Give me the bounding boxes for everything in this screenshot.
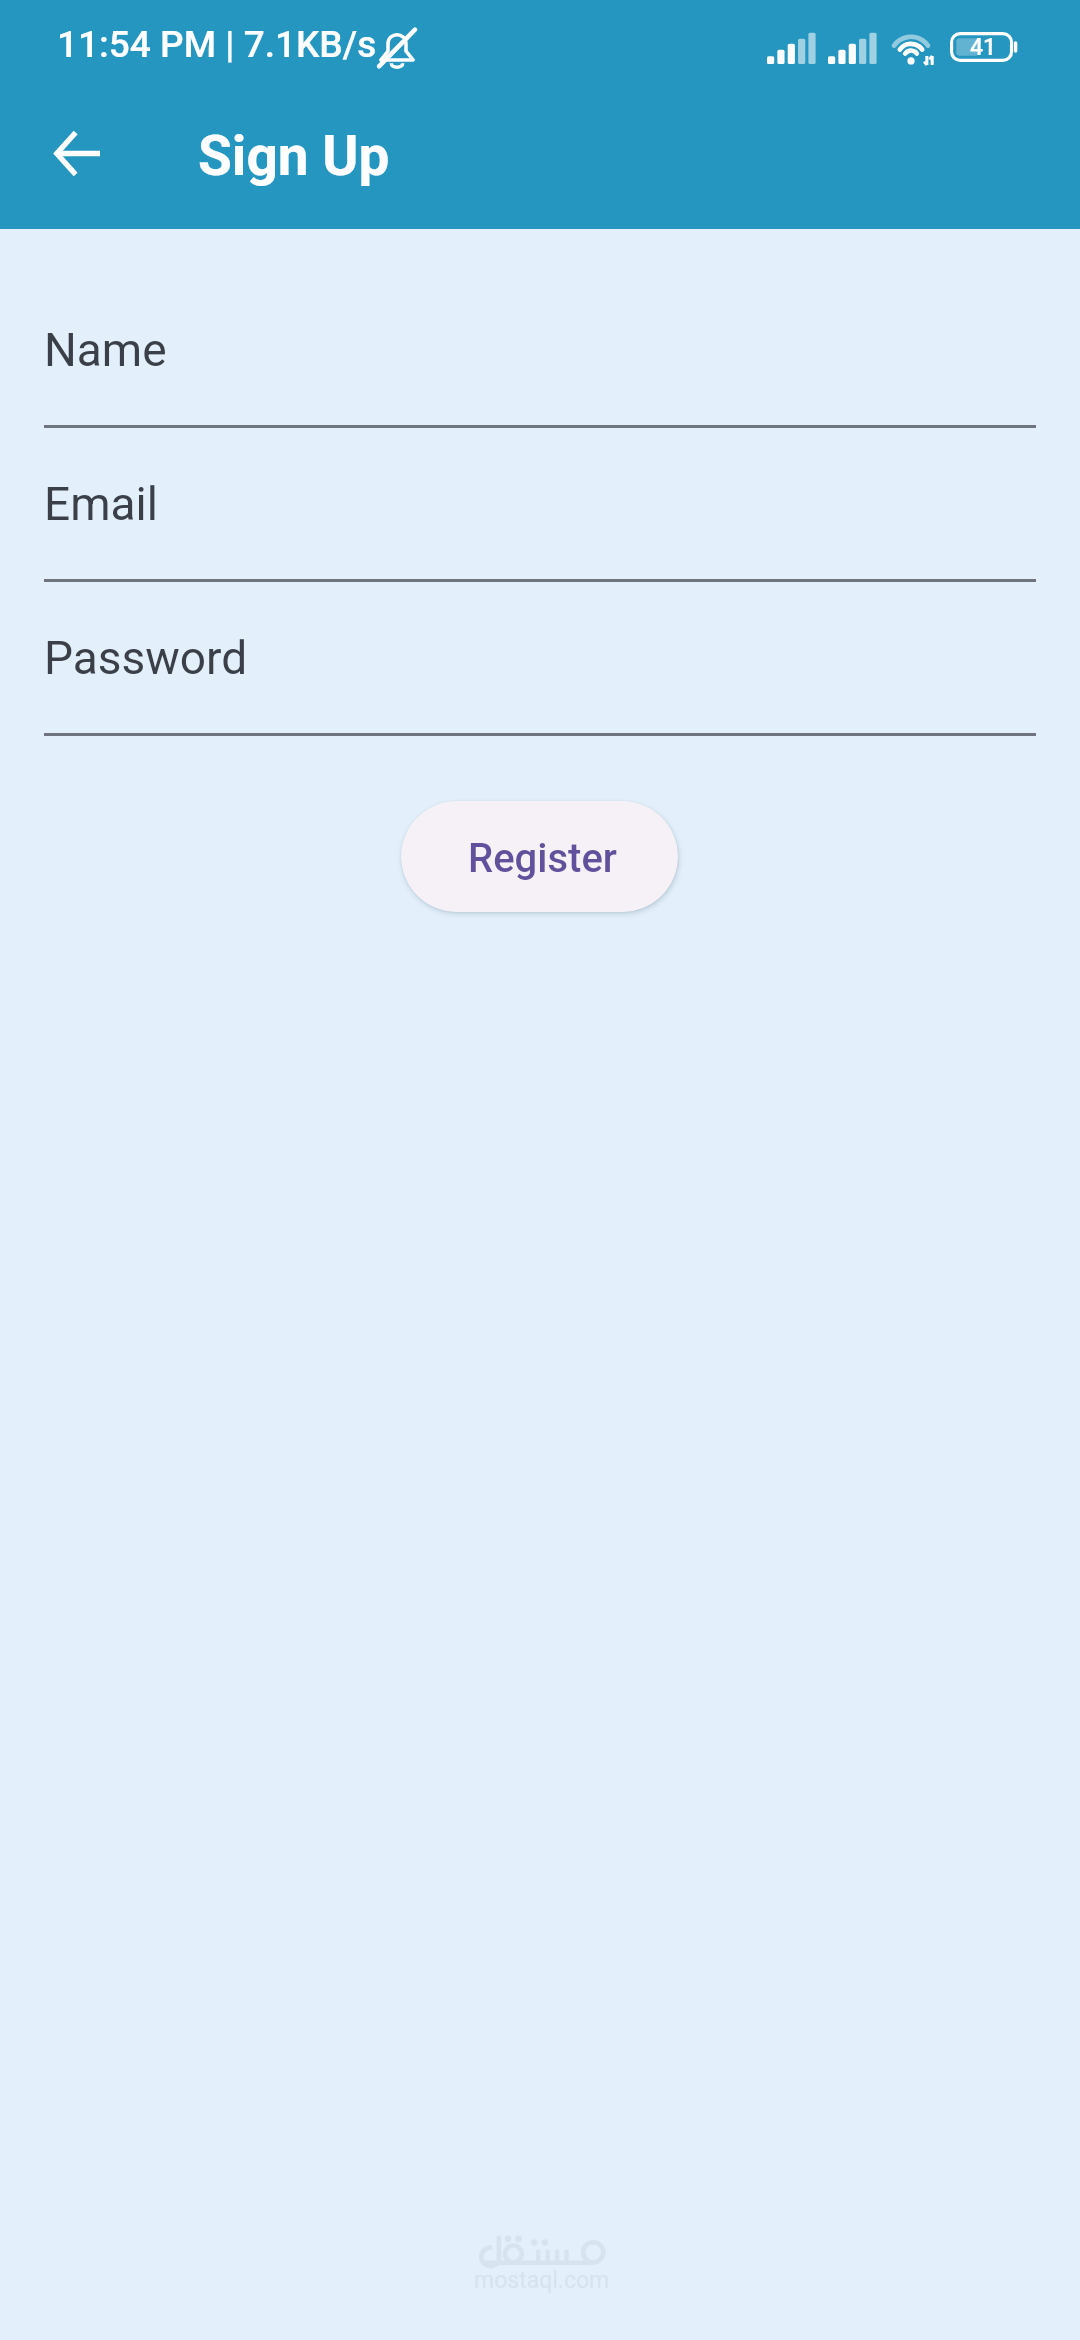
button[interactable]: Register	[401, 801, 678, 912]
staticText: 11:54 PM | 7.1KB/s	[57, 23, 377, 66]
staticText: 41	[970, 34, 997, 61]
staticText: Sign Up	[198, 124, 390, 188]
staticText: mostaql.com	[474, 2267, 610, 2294]
button[interactable]: Back	[29, 105, 125, 201]
staticText: Password	[44, 631, 248, 685]
staticText: Name	[44, 323, 167, 377]
button[interactable]: Name	[44, 317, 1036, 428]
staticText: Email	[44, 477, 158, 531]
button[interactable]: Email	[44, 471, 1036, 582]
staticText: Register	[468, 835, 617, 882]
button[interactable]: Password	[44, 625, 1036, 736]
